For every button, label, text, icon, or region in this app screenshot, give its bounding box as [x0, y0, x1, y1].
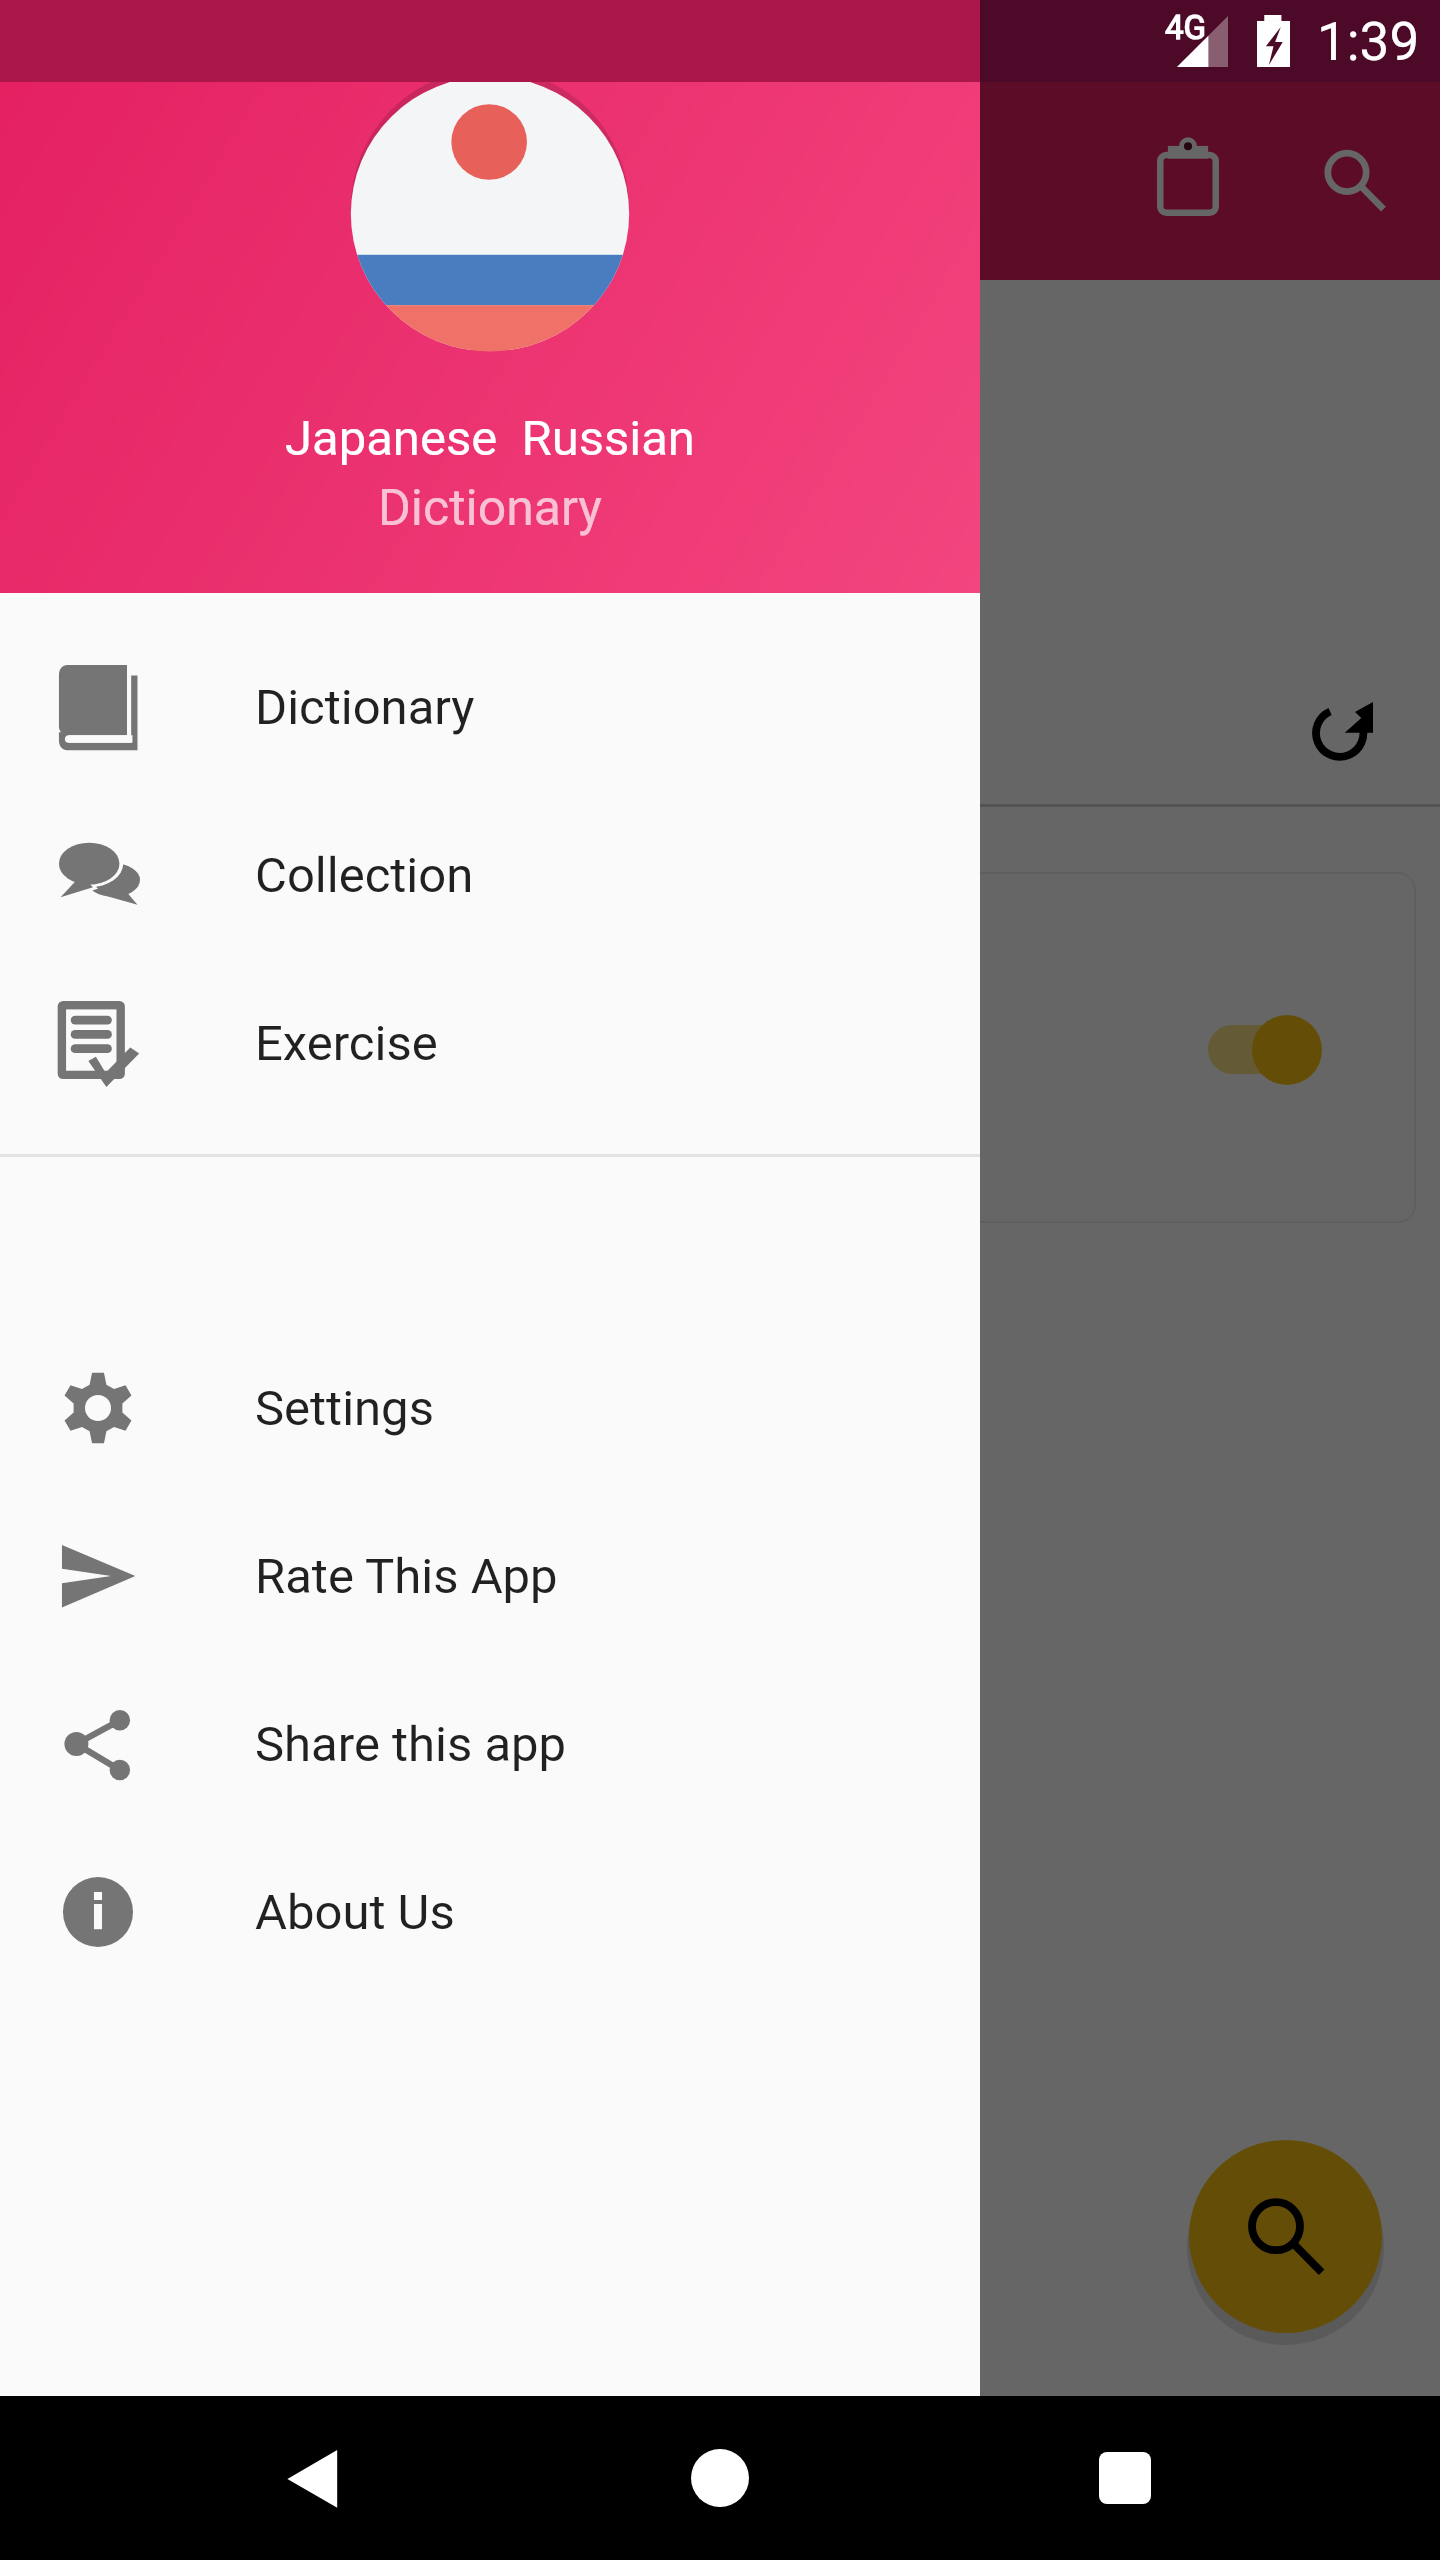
button[interactable]: Dictionary: [0, 623, 980, 791]
staticText: Settings: [255, 1380, 434, 1437]
button[interactable]: Exercise: [0, 959, 980, 1127]
button[interactable]: Collection: [0, 791, 980, 959]
button[interactable]: Search: [1281, 107, 1429, 255]
staticText: Dictionary: [378, 479, 603, 538]
button[interactable]: Refresh: [1313, 698, 1373, 758]
staticText: Exercise: [255, 1015, 438, 1072]
button[interactable]: Share this app: [0, 1660, 980, 1828]
button[interactable]: Toggle: [1208, 1014, 1322, 1085]
staticText: About Us: [255, 1884, 455, 1941]
staticText: Japanese Russian: [285, 410, 695, 467]
staticText: Rate This App: [255, 1548, 558, 1605]
button[interactable]: Settings: [0, 1324, 980, 1492]
button[interactable]: About Us: [0, 1828, 980, 1996]
button[interactable]: Back: [255, 2418, 375, 2538]
button[interactable]: Rate This App: [0, 1492, 980, 1660]
button[interactable]: Search: [1189, 2140, 1382, 2333]
staticText: Dictionary: [255, 679, 475, 736]
button[interactable]: Clipboard: [1114, 103, 1262, 251]
button[interactable]: Recents: [1065, 2418, 1185, 2538]
staticText: Collection: [255, 847, 474, 904]
staticText: 1:39: [1317, 11, 1420, 73]
staticText: Share this app: [255, 1716, 567, 1773]
staticText: 4G: [1165, 8, 1207, 47]
button[interactable]: Home: [660, 2418, 780, 2538]
